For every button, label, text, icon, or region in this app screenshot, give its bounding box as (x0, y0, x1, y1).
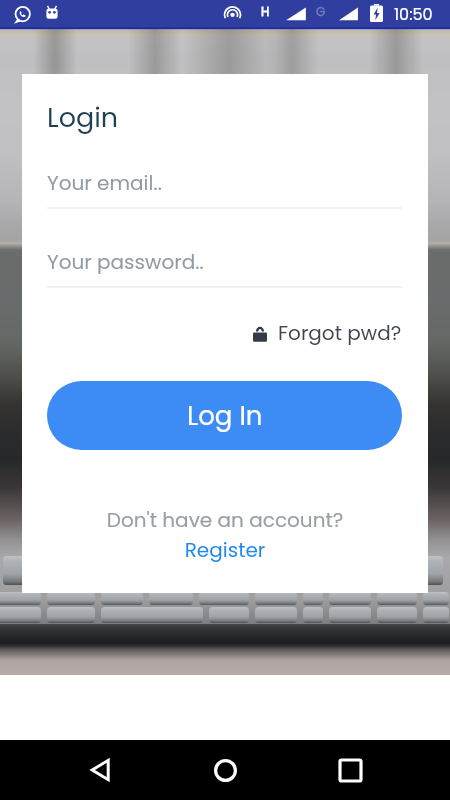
staticText: H (261, 3, 270, 20)
staticText: G (316, 3, 326, 20)
staticText: Login (47, 99, 119, 137)
button[interactable]: Home (201, 746, 249, 794)
button[interactable]: Forgot pwd? (247, 318, 402, 348)
button[interactable]: Recent apps (326, 746, 374, 794)
button[interactable]: Back (77, 746, 125, 794)
staticText: 10:50 (394, 3, 433, 25)
staticText: Don't have an account? (22, 506, 428, 534)
button[interactable]: Log In (47, 381, 402, 450)
staticText: Log In (187, 398, 263, 434)
staticText: Forgot pwd? (278, 319, 402, 347)
staticText: Your email.. (47, 169, 162, 197)
button[interactable]: Register (22, 536, 428, 564)
staticText: Your password.. (47, 248, 204, 276)
